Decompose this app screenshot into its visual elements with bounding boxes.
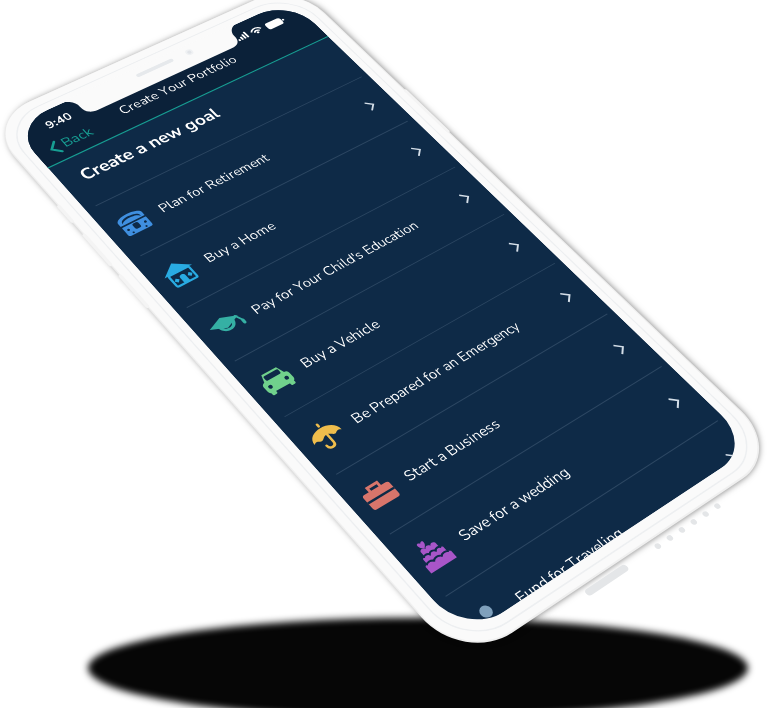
button[interactable]: Create Your Portfolio goals screen xyxy=(0,0,768,708)
